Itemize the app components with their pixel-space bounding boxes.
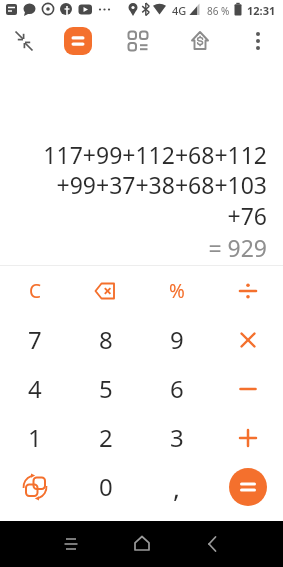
button[interactable]: 2 [70,413,141,462]
button[interactable] [212,462,283,511]
staticText: 1 [28,421,42,454]
staticText: = 929 [208,232,267,263]
staticText: C [29,278,42,304]
button[interactable] [70,266,141,315]
button[interactable] [4,21,44,61]
button[interactable] [0,462,70,511]
button[interactable]: C [0,266,70,315]
staticText: 9 [170,323,184,356]
button[interactable] [212,413,283,462]
button[interactable] [58,21,98,61]
button[interactable] [35,521,106,567]
staticText: 0 [99,470,113,503]
staticText: , [173,470,180,505]
staticText: 117+99+112+68+112 +99+37+38+68+103 +76 [43,139,267,232]
button[interactable]: 5 [70,364,141,413]
staticText: 86 % [207,4,230,18]
staticText: 8 [99,323,113,356]
button[interactable]: 9 [141,315,212,364]
staticText: 4G [172,3,187,18]
staticText: 4 [28,372,42,405]
staticText: 12:31 [247,3,276,18]
button[interactable] [212,364,283,413]
staticText: 7 [28,323,42,356]
button[interactable] [177,521,248,567]
button[interactable]: 1 [0,413,70,462]
button[interactable]: 7 [0,315,70,364]
staticText: 3 [170,421,184,454]
button[interactable] [180,21,220,61]
button[interactable]: % [141,266,212,315]
staticText: % [169,278,185,304]
button[interactable]: , [141,462,212,511]
button[interactable] [106,521,177,567]
button[interactable]: 0 [70,462,141,511]
button[interactable] [212,315,283,364]
button[interactable]: 8 [70,315,141,364]
button[interactable] [212,266,283,315]
button[interactable]: 4 [0,364,70,413]
button[interactable] [238,21,278,61]
staticText: 5 [99,372,113,405]
button[interactable] [118,21,158,61]
button[interactable]: 6 [141,364,212,413]
staticText: 2 [99,421,113,454]
staticText: 6 [170,372,184,405]
button[interactable]: 3 [141,413,212,462]
